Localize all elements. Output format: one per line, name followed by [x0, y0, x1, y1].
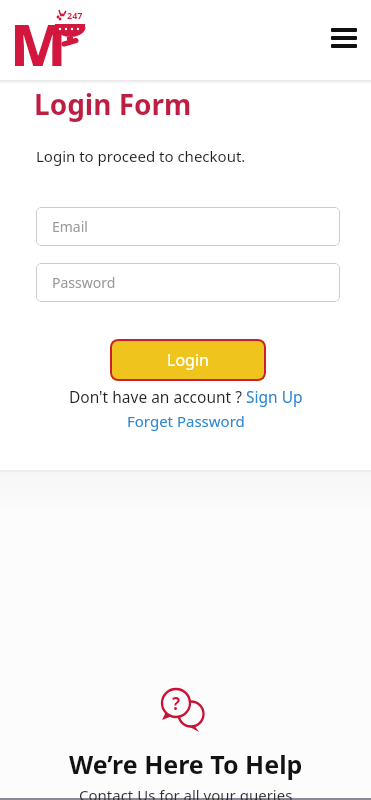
- staticText: M: [10, 5, 67, 83]
- staticText: Password: [52, 273, 116, 292]
- staticText: Login: [167, 349, 209, 371]
- staticText: We’re Here To Help: [69, 747, 303, 781]
- button[interactable]: Forget Password: [123, 407, 249, 435]
- staticText: Login Form: [34, 85, 192, 123]
- staticText: Login to proceed to checkout.: [36, 146, 246, 166]
- staticText: 247: [67, 9, 83, 21]
- button[interactable]: Password: [36, 263, 340, 302]
- button[interactable]: Sign Up: [246, 386, 303, 407]
- button[interactable]: Email: [36, 207, 340, 246]
- button[interactable]: [327, 24, 361, 52]
- staticText: ?: [172, 692, 181, 715]
- staticText: Contact Us for all your queries: [79, 785, 293, 800]
- button[interactable]: Login: [110, 339, 266, 381]
- staticText: Don't have an account ?: [69, 386, 246, 407]
- staticText: Email: [52, 217, 88, 236]
